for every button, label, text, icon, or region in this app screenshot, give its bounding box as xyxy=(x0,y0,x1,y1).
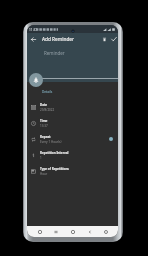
button[interactable]: Back xyxy=(28,34,38,44)
button[interactable]: Reminder icon xyxy=(29,73,43,87)
button[interactable]: Save xyxy=(109,34,118,44)
staticText: Add Reminder xyxy=(42,36,74,42)
button[interactable]: Repetition Interval xyxy=(27,147,118,163)
button[interactable]: Type of Repetitions xyxy=(27,163,118,179)
button[interactable]: Date xyxy=(27,99,118,115)
button[interactable]: Repeat xyxy=(27,131,118,147)
staticText: Repetition Interval xyxy=(40,151,69,155)
staticText: 29/8/2022 xyxy=(40,108,55,112)
button[interactable]: Search xyxy=(101,227,110,236)
button[interactable]: Time xyxy=(27,115,118,131)
button[interactable]: Delete xyxy=(99,34,109,44)
staticText: Time xyxy=(40,119,48,123)
staticText: Date xyxy=(40,103,48,107)
button[interactable]: Home xyxy=(68,227,77,236)
staticText: 11:37 xyxy=(29,28,38,32)
staticText: Reminder xyxy=(44,50,65,56)
button[interactable]: Assistant xyxy=(35,227,44,236)
button[interactable]: Recents xyxy=(51,227,60,236)
staticText: Hour xyxy=(40,172,48,176)
staticText: Details xyxy=(42,90,53,94)
button[interactable]: Back xyxy=(85,227,94,236)
staticText: 1 xyxy=(40,156,42,160)
staticText: Type of Repetitions xyxy=(40,167,69,171)
staticText: Repeat xyxy=(40,135,51,139)
staticText: Every 1 Hour(s) xyxy=(40,140,62,144)
staticText: 13:37 xyxy=(40,124,48,128)
